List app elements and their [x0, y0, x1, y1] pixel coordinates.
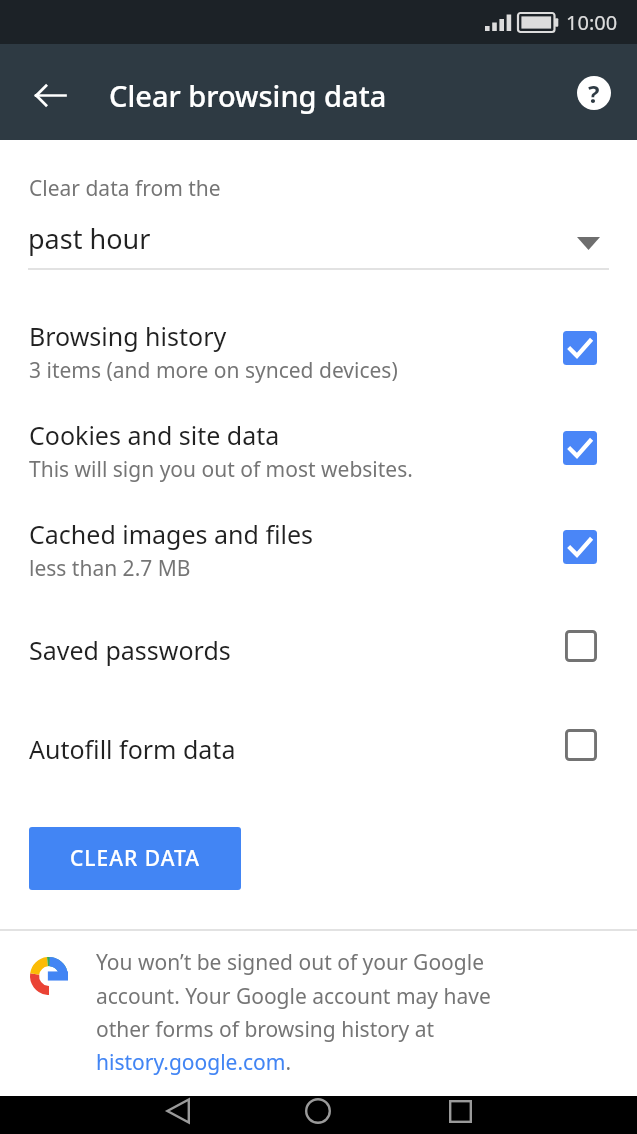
staticText: less than 2.7 MB [29, 554, 191, 583]
button[interactable]: CLEAR DATA [29, 827, 241, 890]
staticText: Browsing history [29, 319, 227, 353]
staticText: Autofill form data [29, 732, 236, 766]
button[interactable]: past hour [28, 215, 609, 270]
staticText: Clear data from the [29, 174, 221, 203]
staticText: You won’t be signed out of your Google a… [96, 948, 538, 1076]
button[interactable]: Help [570, 69, 618, 117]
button[interactable]: Autofill form data [0, 727, 637, 789]
staticText: Saved passwords [29, 633, 231, 667]
button[interactable]: Home [288, 1096, 348, 1134]
staticText: Cookies and site data [29, 418, 280, 452]
staticText: 10:00 [566, 9, 618, 36]
button[interactable]: Cached images and files [0, 512, 637, 594]
staticText: Cached images and files [29, 517, 313, 551]
button[interactable]: Recent apps [430, 1096, 490, 1134]
button[interactable]: Saved passwords [0, 628, 637, 690]
staticText: ? [588, 77, 600, 110]
staticText: Clear browsing data [109, 76, 387, 115]
staticText: 3 items (and more on synced devices) [29, 356, 398, 385]
staticText: This will sign you out of most websites. [29, 455, 413, 484]
button[interactable]: Browsing history [0, 314, 637, 396]
staticText: past hour [28, 220, 151, 257]
button[interactable]: Back [148, 1096, 208, 1134]
button[interactable]: Back [22, 67, 78, 123]
staticText: CLEAR DATA [70, 844, 201, 873]
button[interactable]: Cookies and site data [0, 413, 637, 495]
